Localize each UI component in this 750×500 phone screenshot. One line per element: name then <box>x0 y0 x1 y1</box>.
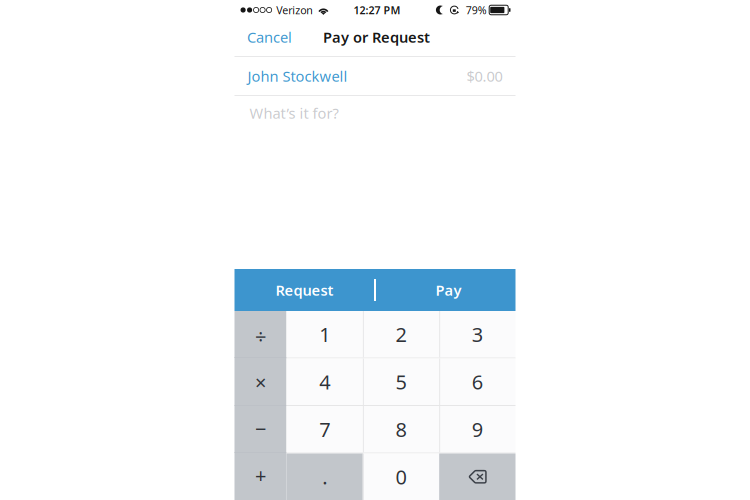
button[interactable]: × <box>234 359 286 405</box>
staticText: 4 <box>319 368 330 395</box>
button[interactable]: 9 <box>439 406 515 452</box>
button[interactable]: Cancel <box>242 20 297 54</box>
staticText: . <box>322 463 327 490</box>
button[interactable]: ÷ <box>234 312 286 359</box>
button[interactable]: 3 <box>439 311 515 357</box>
button[interactable]: John Stockwell <box>247 66 347 86</box>
staticText: $0.00 <box>466 66 502 86</box>
button[interactable]: − <box>234 405 286 452</box>
button[interactable]: 6 <box>439 358 515 405</box>
staticText: 7 <box>319 416 330 443</box>
button[interactable]: Pay <box>375 269 515 311</box>
staticText: Cancel <box>247 27 292 47</box>
staticText: What’s it for? <box>249 103 338 123</box>
button[interactable]: 4 <box>286 358 363 405</box>
staticText: John Stockwell <box>247 66 347 86</box>
staticText: + <box>255 462 266 489</box>
staticText: × <box>255 369 266 396</box>
button[interactable]: 2 <box>363 311 439 357</box>
staticText: 3 <box>472 321 483 348</box>
button[interactable]: 1 <box>286 311 363 357</box>
button[interactable]: 0 <box>363 453 439 500</box>
button[interactable]: . <box>286 453 363 500</box>
button[interactable]: 8 <box>363 406 439 452</box>
staticText: 6 <box>472 368 483 395</box>
staticText: Pay or Request <box>323 27 430 47</box>
staticText: 0 <box>395 463 406 490</box>
staticText: − <box>255 415 266 442</box>
button[interactable]: + <box>234 452 286 498</box>
staticText: Verizon <box>276 3 313 17</box>
staticText: 5 <box>395 368 406 395</box>
button[interactable]: 7 <box>286 406 363 452</box>
button[interactable]: 5 <box>363 358 439 405</box>
button[interactable]: Delete <box>439 453 515 500</box>
staticText: Pay <box>436 280 462 300</box>
staticText: 2 <box>395 321 406 348</box>
staticText: 1 <box>319 321 330 348</box>
staticText: 12:27 PM <box>353 3 400 17</box>
staticText: ÷ <box>255 322 266 349</box>
button[interactable]: Request <box>234 269 375 311</box>
staticText: 8 <box>395 416 406 443</box>
staticText: 9 <box>472 416 483 443</box>
staticText: 79% <box>466 3 487 17</box>
staticText: Request <box>276 280 334 300</box>
